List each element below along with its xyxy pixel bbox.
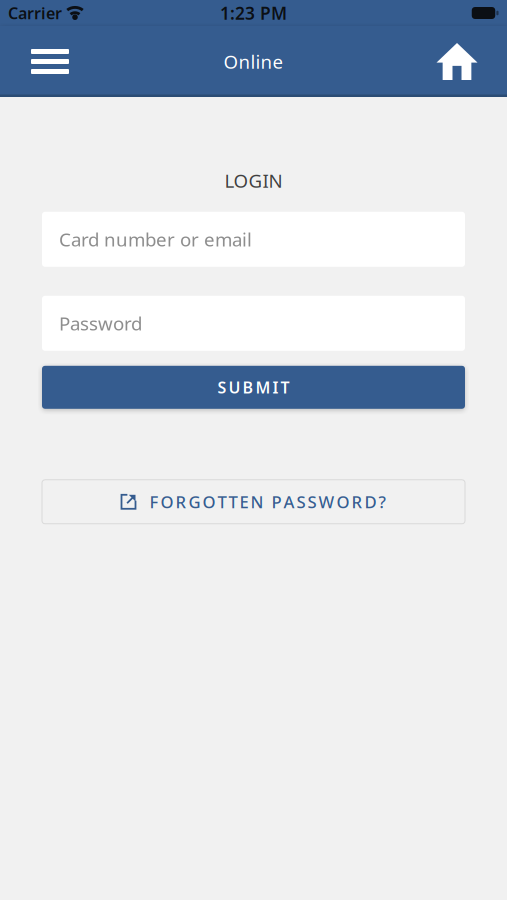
button[interactable]: F O R G O T T E N P A S S W O R D ? <box>42 480 465 524</box>
staticText: Password <box>59 311 142 336</box>
staticText: Online <box>223 49 283 74</box>
staticText: S U B M I T <box>217 377 289 398</box>
staticText: 1:23 PM <box>220 1 287 24</box>
button[interactable]: S U B M I T <box>42 366 465 409</box>
staticText: Card number or email <box>59 227 252 252</box>
button[interactable] <box>427 36 487 86</box>
button[interactable]: Password <box>42 296 465 351</box>
staticText: Carrier <box>8 2 62 24</box>
staticText: F O R G O T T E N P A S S W O R D ? <box>149 490 385 513</box>
button[interactable]: Card number or email <box>42 212 465 267</box>
staticText: LOGIN <box>224 168 282 193</box>
button[interactable] <box>20 36 80 86</box>
